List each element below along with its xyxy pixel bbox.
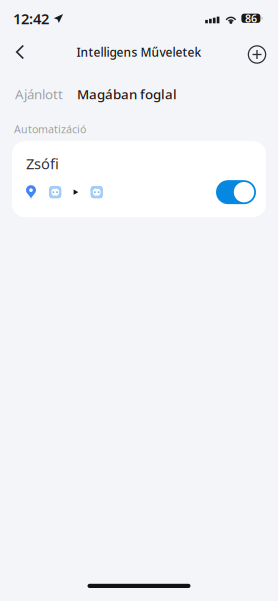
- button[interactable]: Magában foglal: [77, 80, 177, 108]
- button[interactable]: Back: [5, 37, 35, 67]
- staticText: Automatizáció: [14, 122, 86, 136]
- staticText: Intelligens Műveletek: [76, 44, 201, 60]
- button[interactable]: Zsófi: [12, 141, 266, 217]
- staticText: 86: [245, 11, 257, 25]
- staticText: Magában foglal: [77, 85, 177, 103]
- staticText: Zsófi: [26, 154, 59, 173]
- staticText: Ajánlott: [15, 85, 63, 103]
- button[interactable]: Add: [242, 34, 272, 69]
- button[interactable]: Ajánlott: [15, 80, 63, 108]
- staticText: 12:42: [13, 9, 49, 28]
